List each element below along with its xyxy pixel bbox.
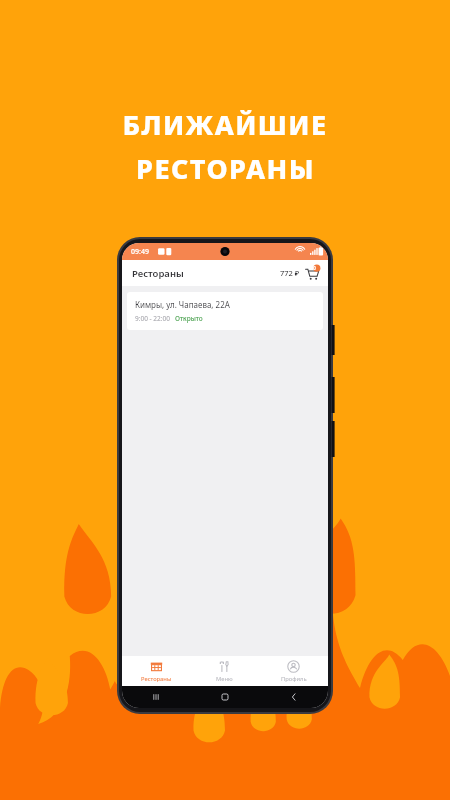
button[interactable]: Профиль <box>259 656 328 686</box>
button[interactable]: Recents <box>122 686 190 708</box>
button[interactable]: Рестораны <box>122 656 190 686</box>
staticText: Открыто <box>175 314 203 323</box>
button[interactable]: Меню <box>190 656 259 686</box>
button[interactable]: Кимры, ул. Чапаева, 22А <box>127 292 323 330</box>
button[interactable]: Back <box>259 686 328 708</box>
staticText: 9:00 - 22:00 <box>135 314 170 323</box>
staticText: 772 ₽ <box>280 268 300 278</box>
staticText: 09:49 <box>131 247 149 257</box>
staticText: Профиль <box>281 675 307 683</box>
staticText: 0 <box>313 265 316 272</box>
staticText: Меню <box>216 675 233 683</box>
staticText: Кимры, ул. Чапаева, 22А <box>135 299 230 310</box>
staticText: БЛИЖАЙШИЕ <box>122 106 328 143</box>
button[interactable]: Home <box>190 686 259 708</box>
staticText: РЕСТОРАНЫ <box>136 150 315 187</box>
staticText: Рестораны <box>141 675 172 683</box>
staticText: Рестораны <box>132 267 184 280</box>
button[interactable]: Корзина <box>304 265 320 281</box>
